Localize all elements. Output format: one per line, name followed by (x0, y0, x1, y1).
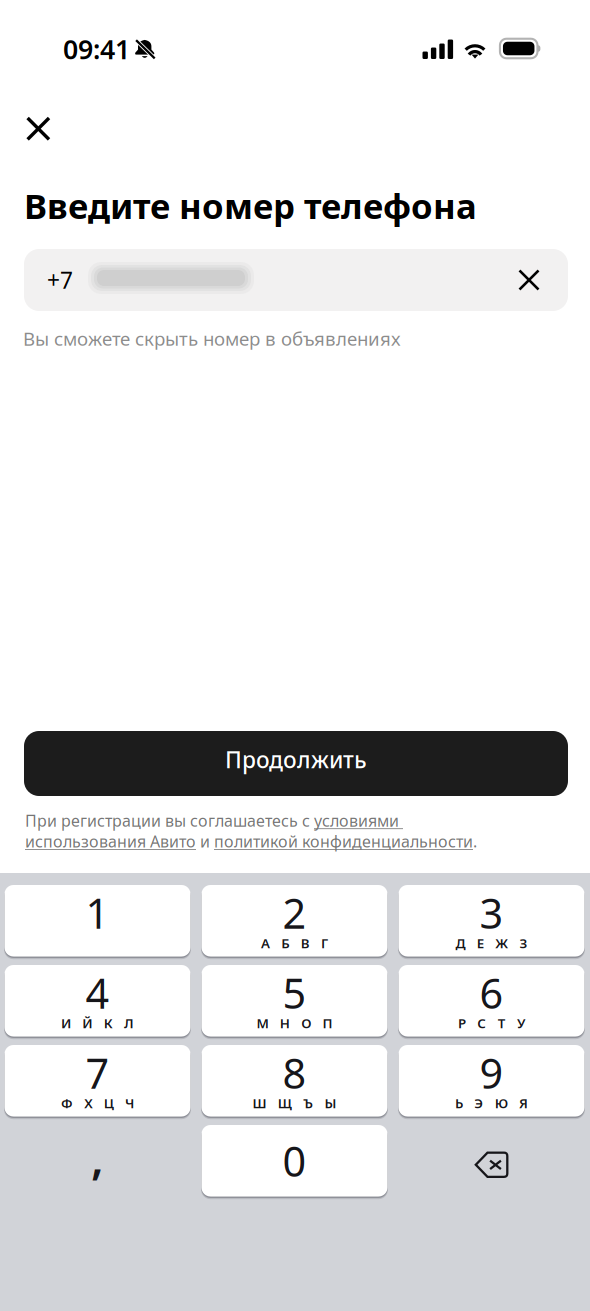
staticText: +7 (47, 265, 73, 295)
button[interactable]: 7 (4, 1045, 190, 1116)
staticText: Б (281, 934, 289, 952)
staticText: При регистрации вы соглашаетесь с услови… (25, 810, 403, 831)
staticText: М (257, 1014, 269, 1032)
button[interactable]: 3 (398, 885, 584, 956)
staticText: 7 (85, 1045, 109, 1100)
button[interactable]: 6 (398, 965, 584, 1036)
staticText: А (261, 934, 270, 952)
button[interactable]: 9 (398, 1045, 584, 1116)
button[interactable]: Продолжить (24, 731, 568, 796)
staticText: использования Авито и политикой конфиден… (25, 831, 477, 852)
staticText: Ц (104, 1094, 114, 1112)
staticText: Введите номер телефона (24, 182, 477, 228)
button[interactable]: Clear (502, 253, 556, 307)
staticText: 8 (282, 1045, 306, 1100)
staticText: 1 (85, 885, 109, 940)
staticText: 0 (282, 1133, 306, 1188)
staticText: Ы (324, 1094, 336, 1112)
staticText: Вы сможете скрыть номер в объявлениях (23, 326, 401, 351)
staticText: И (61, 1014, 71, 1032)
staticText: 9 (479, 1045, 503, 1100)
staticText: П (322, 1014, 332, 1032)
staticText: В (301, 934, 310, 952)
staticText: Е (477, 934, 484, 952)
staticText: Н (280, 1014, 290, 1032)
staticText: Ю (495, 1094, 508, 1112)
staticText: Х (84, 1094, 92, 1112)
staticText: З (519, 934, 527, 952)
button[interactable]: Delete (398, 1129, 584, 1200)
button[interactable]: 5 (201, 965, 387, 1036)
staticText: Продолжить (225, 744, 367, 774)
staticText: Д (456, 934, 466, 952)
staticText: О (301, 1014, 311, 1032)
staticText: , (91, 1127, 104, 1187)
staticText: С (477, 1014, 486, 1032)
staticText: У (517, 1014, 525, 1032)
button[interactable]: 8 (201, 1045, 387, 1116)
staticText: 5 (282, 965, 306, 1020)
staticText: Э (474, 1094, 483, 1112)
button[interactable]: Close (8, 99, 68, 159)
staticText: 3 (479, 885, 503, 940)
staticText: Г (321, 934, 328, 952)
staticText: Ъ (303, 1094, 313, 1112)
staticText: 2 (282, 885, 306, 940)
staticText: Щ (278, 1094, 292, 1112)
staticText: Ч (125, 1094, 134, 1112)
button[interactable]: 0 (201, 1125, 387, 1196)
button[interactable]: 2 (201, 885, 387, 956)
staticText: 09:41 (63, 31, 130, 67)
staticText: Ш (253, 1094, 267, 1112)
staticText: 4 (85, 965, 109, 1020)
staticText: Т (498, 1014, 506, 1032)
staticText: К (104, 1014, 113, 1032)
button[interactable]: 1 (4, 885, 190, 956)
staticText: Ь (455, 1094, 463, 1112)
button[interactable]: Comma (4, 1125, 190, 1196)
staticText: Я (519, 1094, 528, 1112)
button[interactable]: 4 (4, 965, 190, 1036)
staticText: 6 (479, 965, 503, 1020)
staticText: Л (124, 1014, 134, 1032)
staticText: Р (458, 1014, 466, 1032)
staticText: Й (82, 1014, 92, 1032)
staticText: Ж (495, 934, 508, 952)
staticText: Ф (61, 1094, 73, 1112)
